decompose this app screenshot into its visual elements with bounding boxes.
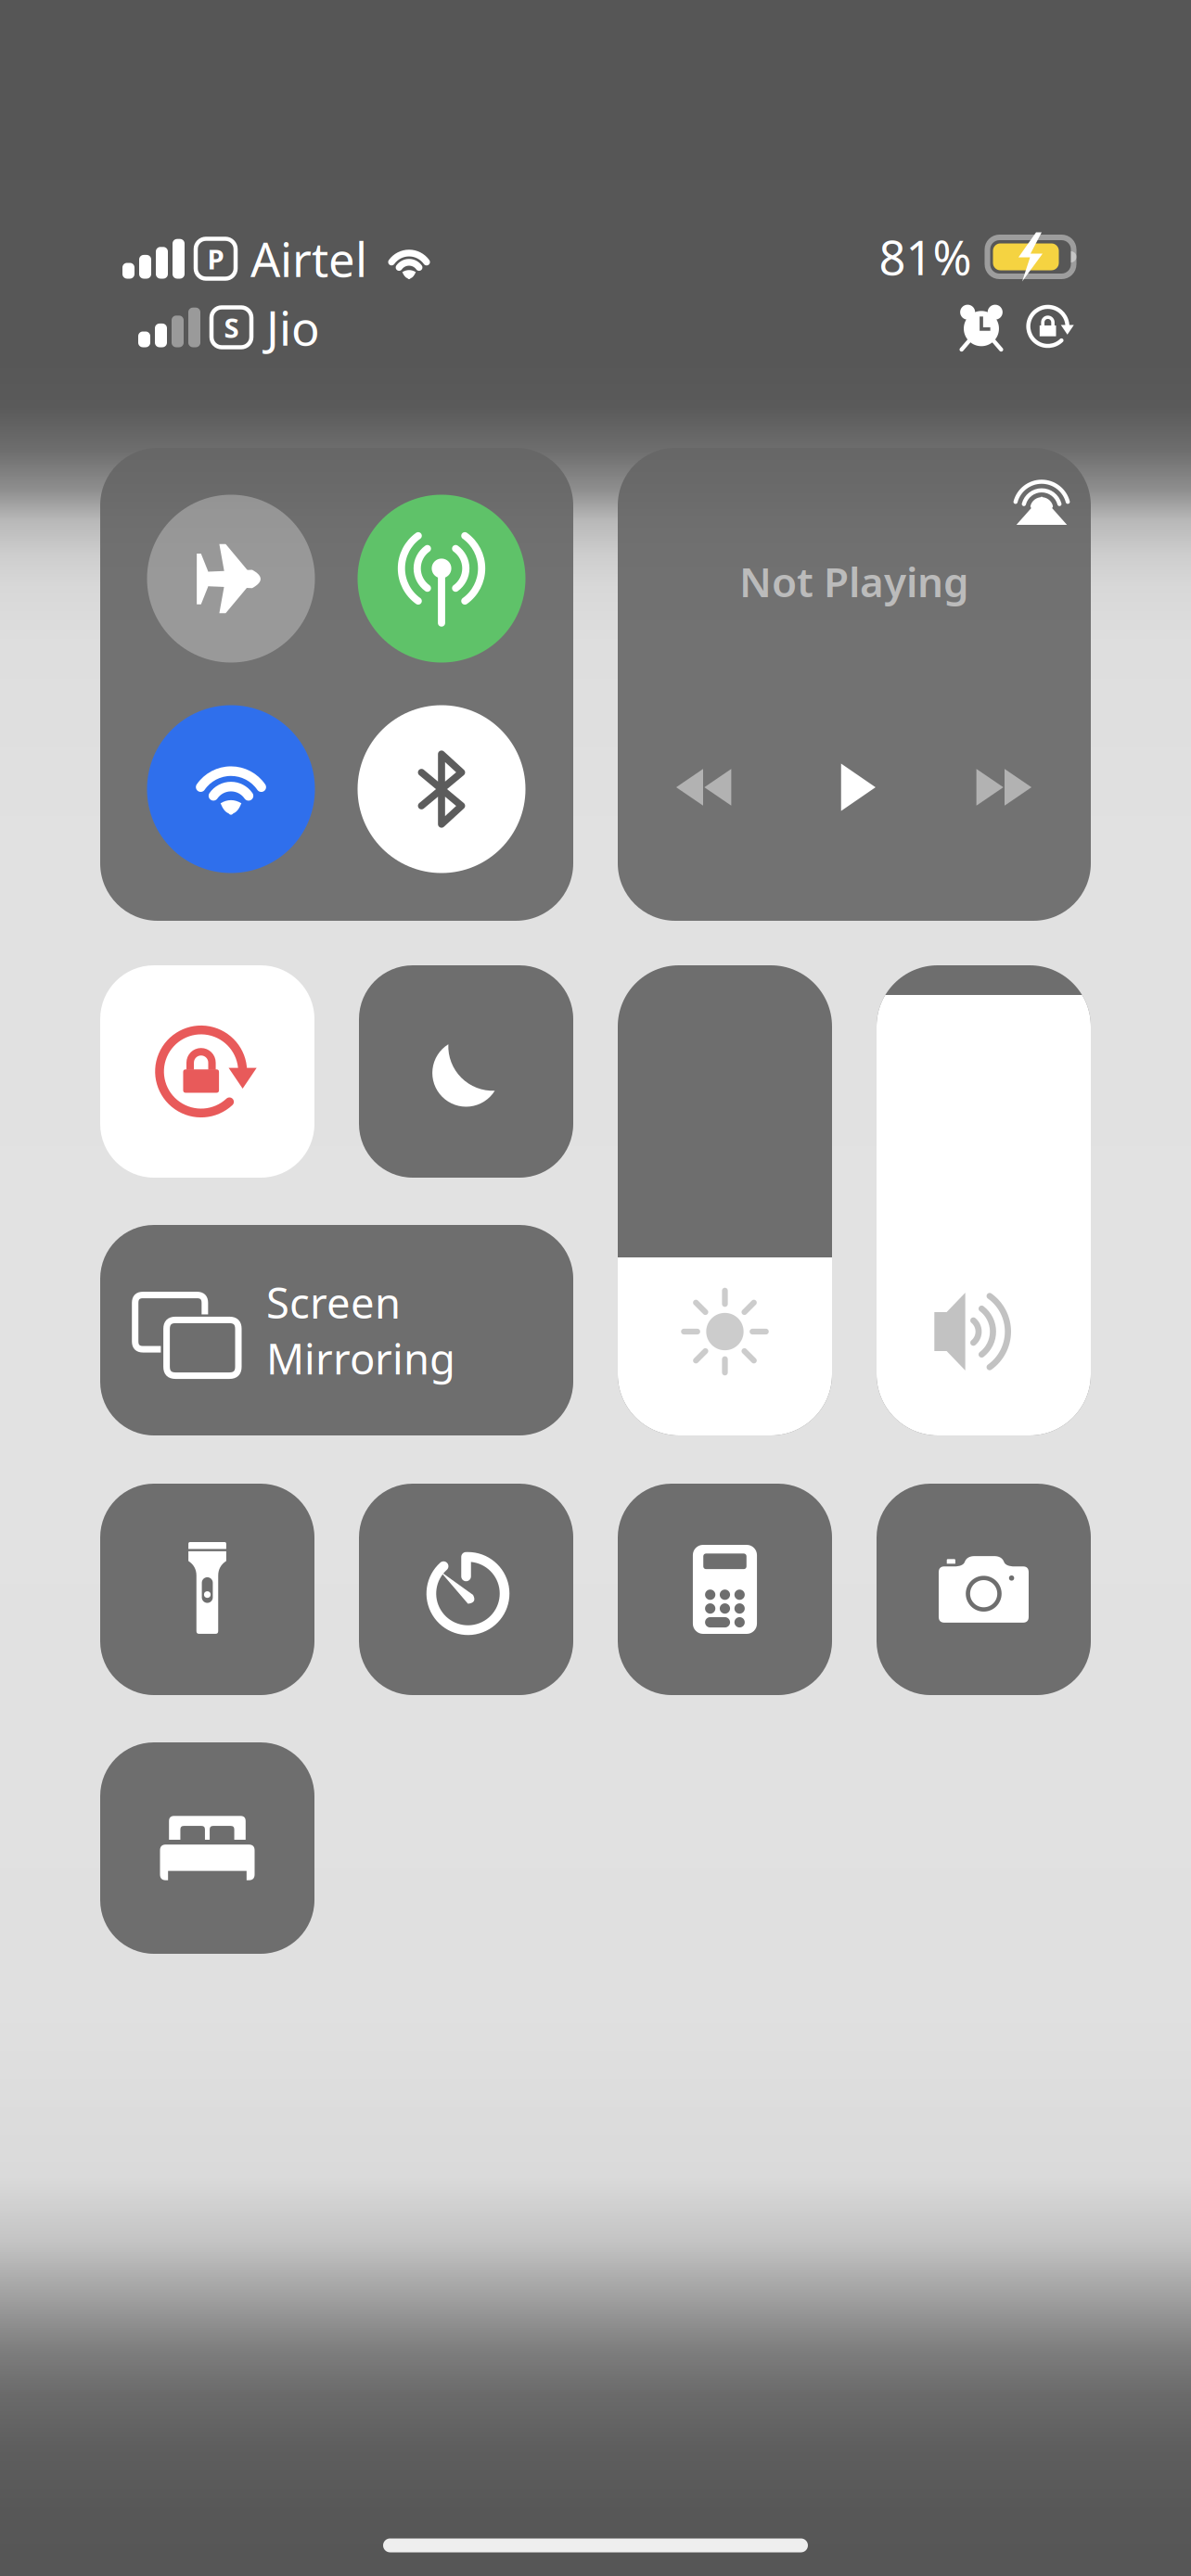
button[interactable]: Bluetooth bbox=[358, 705, 525, 873]
button[interactable]: Sleep Mode bbox=[100, 1742, 314, 1954]
button[interactable]: Rotation Lock bbox=[100, 965, 314, 1178]
staticText: Not Playing bbox=[739, 554, 969, 608]
staticText: Jio bbox=[266, 296, 320, 359]
button[interactable]: Brightness bbox=[618, 965, 832, 1435]
button[interactable]: Wi-Fi bbox=[147, 705, 315, 873]
button[interactable]: Rewind bbox=[672, 757, 734, 818]
button[interactable]: Play bbox=[829, 760, 883, 814]
button[interactable]: Camera bbox=[877, 1484, 1091, 1695]
button[interactable]: AirPlay bbox=[1013, 467, 1070, 525]
button[interactable]: Calculator bbox=[618, 1484, 832, 1695]
button[interactable]: Timer bbox=[359, 1484, 573, 1695]
staticText: S bbox=[224, 309, 239, 345]
staticText: P bbox=[207, 241, 224, 277]
button[interactable]: Flashlight bbox=[100, 1484, 314, 1695]
staticText: Airtel bbox=[250, 228, 367, 290]
button[interactable]: Volume bbox=[877, 965, 1091, 1435]
button[interactable]: Airplane Mode bbox=[147, 495, 315, 663]
button[interactable]: Cellular Data bbox=[358, 495, 525, 663]
button[interactable]: Screen Mirroring bbox=[100, 1225, 573, 1435]
button[interactable]: Do Not Disturb bbox=[359, 965, 573, 1178]
staticText: 81% bbox=[879, 226, 972, 288]
staticText: Screen Mirroring bbox=[266, 1274, 455, 1386]
button[interactable]: Fast Forward bbox=[974, 757, 1035, 818]
